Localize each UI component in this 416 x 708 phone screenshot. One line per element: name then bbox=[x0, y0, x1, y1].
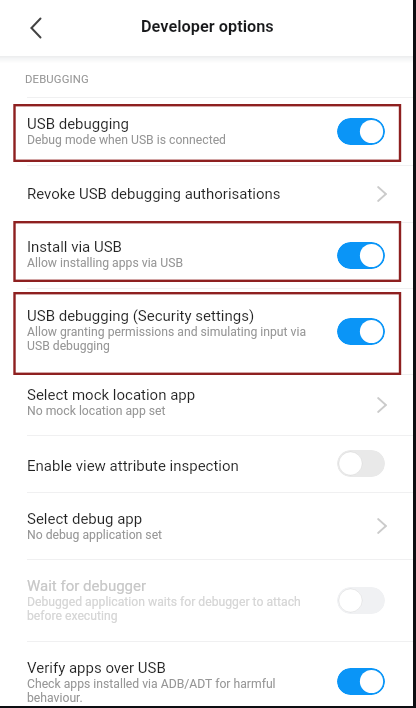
button[interactable]: Wait for debugger bbox=[0, 559, 416, 641]
staticText: DEBUGGING bbox=[25, 73, 89, 86]
staticText: USB debugging bbox=[27, 115, 130, 133]
button[interactable]: Open bbox=[370, 182, 394, 206]
staticText: Allow granting permissions and simulatin… bbox=[27, 325, 307, 339]
staticText: Install via USB bbox=[27, 238, 122, 256]
button[interactable]: Switch off bbox=[337, 450, 385, 477]
button[interactable]: Switch on bbox=[337, 118, 385, 145]
staticText: Allow installing apps via USB bbox=[27, 256, 183, 270]
button[interactable]: Switch on bbox=[337, 668, 385, 695]
staticText: Revoke USB debugging authorisations bbox=[27, 185, 281, 203]
staticText: before executing bbox=[27, 609, 118, 623]
staticText: Select mock location app bbox=[27, 386, 196, 404]
staticText: USB debugging (Security settings) bbox=[27, 307, 255, 325]
staticText: Debugged application waits for debugger … bbox=[27, 595, 301, 609]
staticText: No debug application set bbox=[27, 528, 163, 542]
staticText: Verify apps over USB bbox=[27, 659, 166, 677]
staticText: behaviour. bbox=[27, 691, 83, 705]
button[interactable]: USB debugging bbox=[0, 98, 416, 165]
button[interactable]: Switch on bbox=[337, 318, 385, 345]
button[interactable]: Open bbox=[370, 393, 394, 417]
button[interactable]: Verify apps over USB bbox=[0, 641, 416, 708]
button[interactable]: Revoke USB debugging authorisations bbox=[0, 165, 416, 223]
staticText: Check apps installed via ADB/ADT for har… bbox=[27, 677, 276, 691]
button[interactable]: USB debugging (Security settings) bbox=[0, 288, 416, 374]
staticText: USB debugging bbox=[27, 339, 110, 353]
staticText: Developer options bbox=[141, 17, 274, 36]
button[interactable]: Select debug app bbox=[0, 492, 416, 560]
staticText: Select debug app bbox=[27, 510, 143, 528]
button[interactable]: Switch off bbox=[337, 587, 385, 614]
button[interactable]: Enable view attribute inspection bbox=[0, 435, 416, 492]
button[interactable]: Open bbox=[370, 514, 394, 538]
button[interactable]: Switch on bbox=[337, 242, 385, 269]
button[interactable]: Install via USB bbox=[0, 222, 416, 288]
button[interactable]: Select mock location app bbox=[0, 374, 416, 435]
staticText: Debug mode when USB is connected bbox=[27, 133, 226, 147]
staticText: No mock location app set bbox=[27, 404, 166, 418]
staticText: Enable view attribute inspection bbox=[27, 457, 239, 475]
button[interactable]: Back bbox=[17, 10, 53, 46]
staticText: Wait for debugger bbox=[27, 577, 147, 595]
